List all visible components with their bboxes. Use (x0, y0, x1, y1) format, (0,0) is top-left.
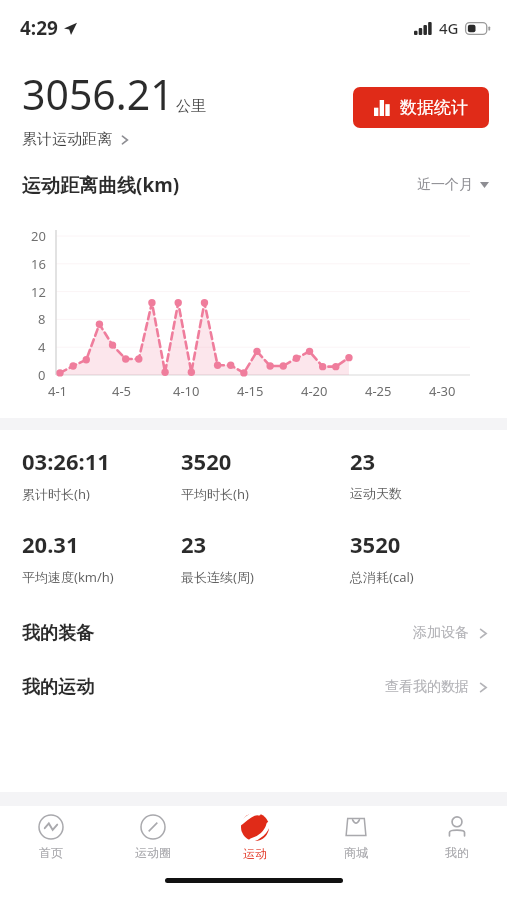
staticText: 03:26:11 (22, 446, 110, 476)
button[interactable]: 首页 (0, 806, 102, 868)
staticText: 16 (31, 255, 46, 273)
staticText: 4-1 (48, 382, 68, 400)
staticText: 首页 (39, 845, 63, 860)
staticText: 4 (38, 338, 46, 356)
staticText: 我的 (445, 845, 469, 860)
staticText: 累计运动距离 (22, 130, 112, 149)
staticText: 4-30 (429, 382, 456, 400)
button[interactable]: 我的运动 (0, 660, 507, 714)
staticText: 4-20 (301, 382, 328, 400)
staticText: 3056.21 (22, 66, 174, 122)
button[interactable]: 近一个月 (417, 176, 489, 194)
staticText: 我的装备 (22, 622, 94, 645)
staticText: 添加设备 (413, 624, 469, 642)
button[interactable]: 运动 (204, 806, 305, 868)
staticText: 运动 (243, 846, 267, 861)
staticText: 4G (439, 18, 459, 38)
button[interactable]: 商城 (305, 806, 406, 868)
staticText: 平均时长(h) (181, 485, 249, 503)
staticText: 近一个月 (417, 176, 473, 194)
staticText: 运动天数 (350, 485, 402, 501)
staticText: 0 (38, 366, 46, 384)
staticText: 平均速度(km/h) (22, 568, 114, 586)
staticText: 商城 (344, 845, 368, 860)
staticText: 4-15 (237, 382, 264, 400)
staticText: 查看我的数据 (385, 678, 469, 696)
staticText: 数据统计 (400, 97, 468, 118)
staticText: 4-25 (365, 382, 392, 400)
staticText: 23 (181, 529, 207, 559)
staticText: 23 (350, 446, 376, 476)
button[interactable]: 累计运动距离 (22, 130, 130, 149)
staticText: 4-10 (173, 382, 200, 400)
staticText: 12 (31, 283, 46, 301)
staticText: 20 (31, 227, 46, 245)
staticText: 公里 (176, 97, 206, 116)
staticText: 累计时长(h) (22, 485, 90, 503)
staticText: 我的运动 (22, 676, 94, 699)
staticText: 运动圈 (135, 845, 171, 860)
button[interactable]: 我的 (406, 806, 507, 868)
staticText: 4:29 (20, 15, 58, 41)
staticText: 8 (38, 310, 46, 328)
button[interactable]: 数据统计 (353, 87, 489, 128)
button[interactable]: 我的装备 (0, 606, 507, 660)
staticText: 4-5 (112, 382, 132, 400)
staticText: 3520 (181, 446, 232, 476)
staticText: 3520 (350, 529, 401, 559)
staticText: 总消耗(cal) (350, 568, 414, 586)
button[interactable]: 运动圈 (102, 806, 204, 868)
staticText: 20.31 (22, 529, 79, 559)
staticText: 最长连续(周) (181, 568, 254, 586)
staticText: 运动距离曲线(km) (22, 172, 180, 198)
